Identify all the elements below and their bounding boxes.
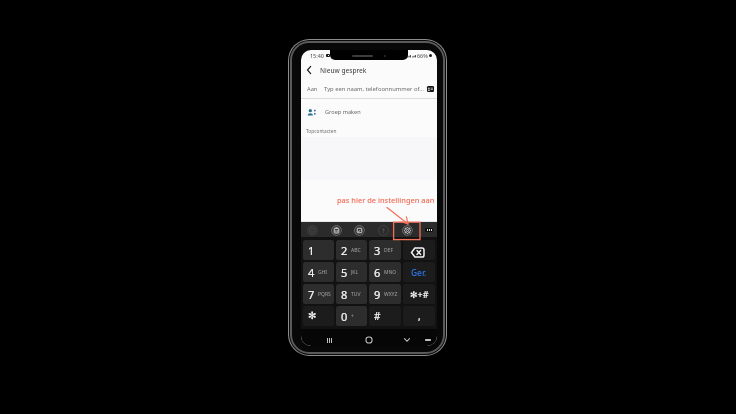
staticText: 5 (341, 265, 348, 280)
button[interactable]: Voice input (377, 224, 389, 236)
staticText: Groep maken (325, 108, 361, 116)
staticText: 15:40 (310, 52, 324, 59)
staticText: DEF (384, 247, 394, 254)
button[interactable]: Home (363, 334, 375, 346)
button[interactable]: 2 (336, 240, 367, 260)
staticText: # (374, 309, 381, 323)
button[interactable]: Hide keyboard (401, 334, 413, 346)
button[interactable]: 6 (369, 262, 401, 282)
staticText: MNO (384, 269, 397, 276)
button[interactable]: Clipboard (330, 224, 342, 236)
button[interactable]: Groep maken (301, 99, 437, 125)
staticText: Aan (307, 85, 318, 93)
button[interactable]: Back (301, 61, 317, 79)
staticText: 4 (308, 265, 315, 280)
staticText: Nieuw gesprek (320, 66, 367, 75)
staticText: TUV (351, 291, 361, 298)
staticText: ✻+# (410, 288, 429, 300)
staticText: 7 (308, 287, 315, 302)
button[interactable]: 1 (303, 240, 334, 260)
button[interactable]: Recents (323, 334, 335, 346)
button[interactable]: Ger. (403, 262, 435, 282)
button[interactable]: 7 (303, 284, 334, 304)
button[interactable]: Stickers (306, 224, 318, 236)
button[interactable] (403, 240, 435, 260)
staticText: 1 (308, 243, 315, 258)
staticText: + (351, 313, 354, 320)
staticText: ✻ (308, 310, 317, 322)
staticText: pas hier de instellingen aan (337, 195, 435, 205)
staticText: 0 (341, 309, 348, 324)
staticText: , (418, 309, 421, 323)
button[interactable]: ✻ (303, 306, 334, 326)
button[interactable]: Open contacts (424, 79, 437, 98)
staticText: 8 (341, 287, 348, 302)
button[interactable]: 4 (303, 262, 334, 282)
button[interactable]: Keyboard layout (422, 334, 434, 346)
button[interactable]: 9 (369, 284, 401, 304)
staticText: Typ een naam, telefoonnummer of… (324, 85, 424, 93)
button[interactable]: 8 (336, 284, 367, 304)
staticText: ABC (351, 247, 361, 254)
button[interactable]: ✻+# (403, 284, 435, 304)
staticText: PQRS (318, 291, 331, 298)
staticText: GHI (318, 269, 328, 276)
staticText: JKL (351, 269, 359, 276)
button[interactable]: Aan (301, 79, 437, 98)
button[interactable]: 3 (369, 240, 401, 260)
staticText: 66% (417, 52, 428, 59)
button[interactable]: 5 (336, 262, 367, 282)
button[interactable]: # (369, 306, 401, 326)
staticText: 9 (374, 287, 381, 302)
button[interactable]: , (403, 306, 435, 326)
button[interactable]: Keyboard settings (401, 224, 413, 236)
button[interactable]: 0 (336, 306, 367, 326)
staticText: 3 (374, 243, 381, 258)
staticText: Topcontacten (306, 128, 337, 135)
button[interactable]: Text editing (353, 224, 365, 236)
staticText: Ger. (411, 267, 427, 278)
button[interactable]: More options (425, 228, 433, 232)
staticText: 2 (341, 243, 348, 258)
staticText: 6 (374, 265, 381, 280)
staticText: WXYZ (384, 291, 398, 298)
